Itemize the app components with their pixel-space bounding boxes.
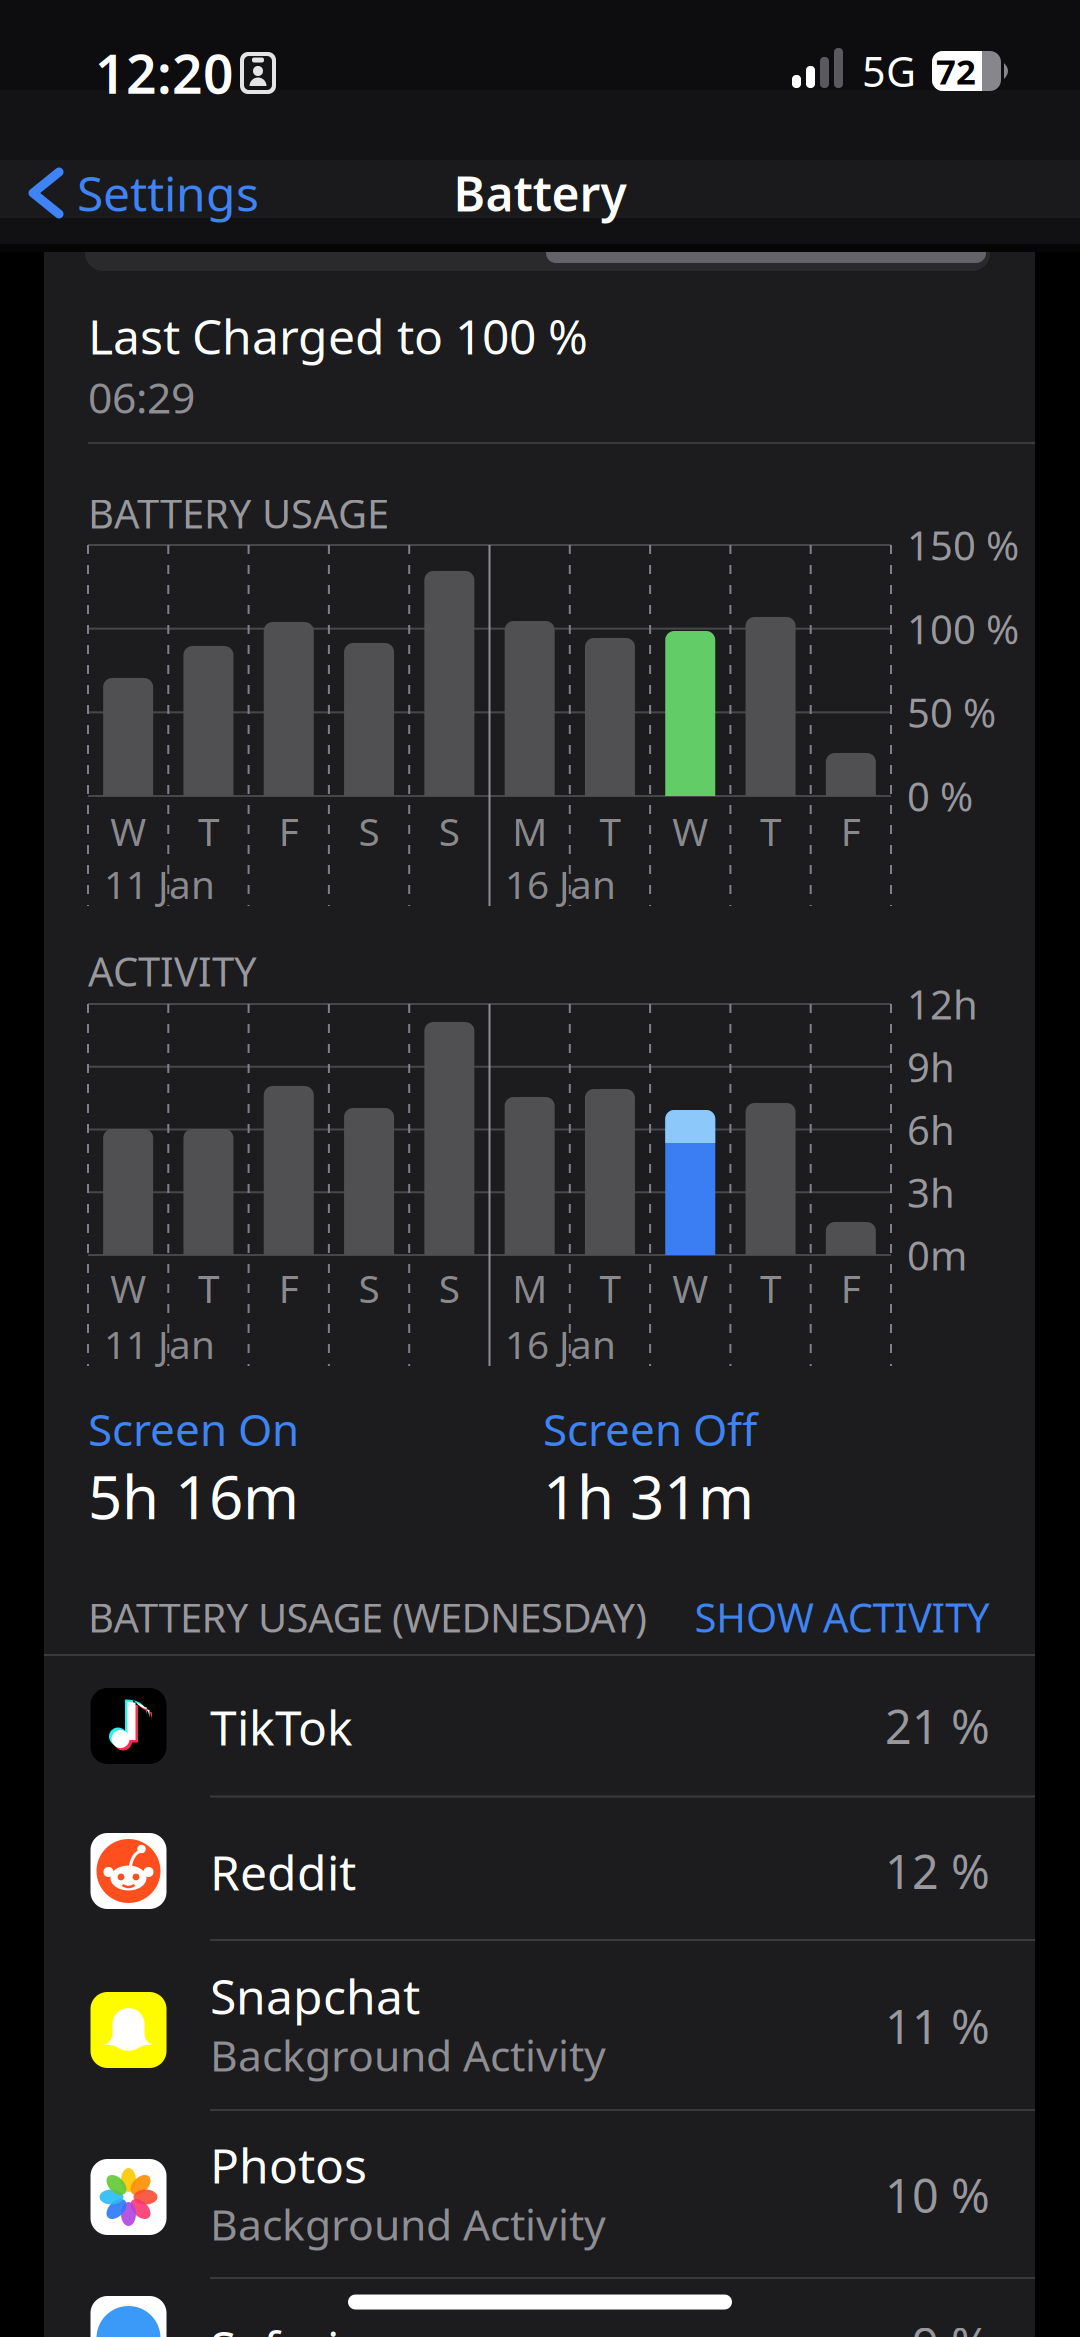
staticText: W (110, 805, 146, 857)
staticText: 16 Jan (505, 1318, 616, 1370)
staticText: 21 % (885, 1695, 990, 1757)
button[interactable]: Settings (29, 161, 259, 225)
staticText: SHOW ACTIVITY (695, 1590, 990, 1643)
staticText: 9 % (912, 2313, 990, 2337)
staticText: TikTok (210, 1695, 353, 1759)
staticText: 11 % (885, 1995, 990, 2057)
staticText: T (760, 1262, 781, 1314)
button[interactable]: Photos (44, 2111, 1035, 2279)
staticText: T (760, 805, 781, 857)
staticText: 9h (907, 1040, 955, 1093)
staticText: BATTERY USAGE (WEDNESDAY) (88, 1590, 647, 1643)
staticText: 50 % (907, 686, 996, 739)
staticText: ACTIVITY (88, 944, 257, 997)
staticText: 10 % (885, 2164, 990, 2226)
staticText: 150 % (907, 518, 1019, 571)
staticText: F (279, 1262, 299, 1314)
staticText: 12h (907, 977, 978, 1030)
staticText: Safari (210, 2316, 339, 2337)
staticText: T (198, 1262, 219, 1314)
staticText: W (110, 1262, 146, 1314)
staticText: T (599, 1262, 620, 1314)
staticText: 0 % (907, 769, 973, 822)
staticText: M (512, 1262, 547, 1314)
staticText: Last Charged to 100 % (88, 304, 588, 368)
staticText: 16 Jan (505, 858, 616, 910)
staticText: 06:29 (88, 369, 195, 425)
staticText: 12 % (885, 1840, 990, 1902)
staticText: Snapchat (210, 1964, 420, 2028)
button[interactable]: Last 10 Days (85, 211, 990, 271)
staticText: Screen On (88, 1400, 299, 1458)
staticText: Photos (210, 2133, 367, 2197)
staticText: BATTERY USAGE (88, 486, 389, 539)
staticText: Settings (77, 161, 259, 225)
button[interactable]: Home (348, 2294, 732, 2309)
button[interactable]: Snapchat (44, 1942, 1035, 2110)
staticText: 1h 31m (543, 1456, 754, 1536)
staticText: 12:20 (95, 38, 234, 108)
staticText: S (439, 1262, 460, 1314)
staticText: F (841, 805, 861, 857)
staticText: Battery (453, 161, 626, 225)
button[interactable]: TikTok (44, 1654, 1035, 1798)
staticText: 0m (907, 1228, 967, 1281)
staticText: W (672, 1262, 708, 1314)
staticText: Background Activity (210, 2027, 606, 2083)
staticText: Screen Off (543, 1400, 757, 1458)
staticText: S (359, 1262, 380, 1314)
staticText: 11 Jan (104, 1318, 215, 1370)
staticText: 100 % (907, 602, 1019, 655)
staticText: 72 (936, 48, 976, 94)
staticText: T (599, 805, 620, 857)
staticText: S (439, 805, 460, 857)
staticText: 6h (907, 1103, 955, 1156)
staticText: M (512, 805, 547, 857)
button[interactable]: SHOW ACTIVITY (590, 1590, 990, 1643)
button[interactable]: Reddit (44, 1799, 1035, 1943)
staticText: W (672, 805, 708, 857)
staticText: 5h 16m (88, 1456, 299, 1536)
staticText: S (359, 805, 380, 857)
staticText: F (841, 1262, 861, 1314)
staticText: Background Activity (210, 2196, 606, 2252)
staticText: T (198, 805, 219, 857)
staticText: Reddit (210, 1840, 356, 1904)
staticText: F (279, 805, 299, 857)
staticText: 5G (862, 44, 916, 98)
staticText: 11 Jan (104, 858, 215, 910)
staticText: 3h (907, 1166, 955, 1219)
